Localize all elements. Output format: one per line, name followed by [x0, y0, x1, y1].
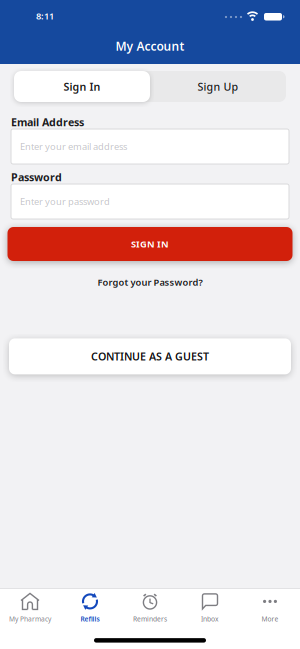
button[interactable]: Inbox — [180, 592, 240, 623]
staticText: Reminders — [133, 614, 167, 623]
button[interactable]: SIGN IN — [7, 227, 292, 261]
button[interactable]: Sign In — [14, 71, 150, 102]
button[interactable]: Sign Up — [150, 71, 286, 102]
button[interactable]: CONTINUE AS A GUEST — [9, 338, 291, 374]
button[interactable]: Refills — [60, 592, 120, 623]
staticText: Inbox — [201, 614, 219, 623]
staticText: More — [261, 614, 278, 623]
staticText: My Account — [115, 38, 184, 54]
button[interactable]: Reminders — [120, 592, 180, 623]
staticText: Refills — [80, 614, 99, 623]
staticText: Sign In — [63, 79, 100, 94]
staticText: Password — [11, 170, 62, 184]
staticText: 8:11 — [36, 10, 54, 22]
staticText: Sign Up — [197, 79, 238, 94]
staticText: Enter your password — [20, 195, 110, 208]
staticText: Enter your email address — [20, 140, 127, 153]
button[interactable]: Forgot your Password? — [97, 276, 202, 288]
staticText: Forgot your Password? — [97, 276, 202, 288]
staticText: SIGN IN — [131, 238, 169, 250]
staticText: CONTINUE AS A GUEST — [91, 349, 209, 363]
staticText: Email Address — [11, 115, 84, 129]
button[interactable]: My Pharmacy — [0, 592, 60, 623]
button[interactable]: More — [240, 592, 300, 623]
staticText: My Pharmacy — [9, 614, 51, 623]
